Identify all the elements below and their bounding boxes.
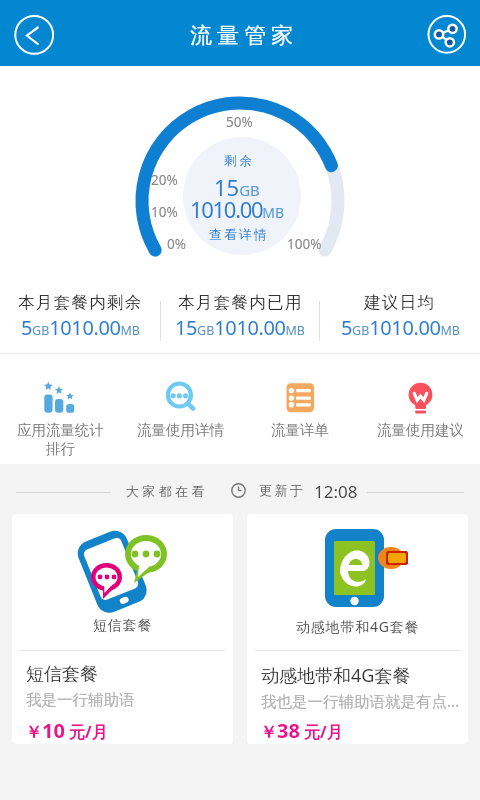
- button[interactable]: 流量使用建议: [360, 354, 480, 464]
- button[interactable]: Share: [425, 14, 467, 56]
- staticText: 5GB1010.00MB: [21, 314, 140, 341]
- staticText: 我是一行辅助语: [26, 690, 135, 710]
- button[interactable]: 本月套餐内剩余: [0, 288, 160, 353]
- staticText: 12:08: [314, 480, 358, 503]
- staticText: 短信套餐: [93, 617, 153, 635]
- staticText: 更新于: [259, 482, 306, 498]
- staticText: 流量使用详情: [137, 421, 224, 439]
- button[interactable]: 动感地带和4G套餐: [247, 514, 468, 744]
- staticText: 50%: [226, 113, 253, 131]
- staticText: 我也是一行辅助语就是有点…: [261, 690, 460, 711]
- staticText: 应用流量统计 排行: [17, 421, 104, 458]
- staticText: ￥10 元/月: [25, 717, 108, 744]
- staticText: 0%: [167, 235, 186, 253]
- staticText: 流量使用建议: [377, 421, 464, 439]
- staticText: 动感地带和4G套餐: [296, 617, 420, 636]
- staticText: 流量详单: [271, 421, 329, 439]
- staticText: 大家都在看: [124, 483, 206, 499]
- staticText: 短信套餐: [26, 663, 98, 686]
- staticText: 100%: [287, 235, 322, 253]
- staticText: 动感地带和4G套餐: [261, 663, 411, 688]
- staticText: 本月套餐内剩余: [18, 292, 143, 313]
- staticText: 20%: [151, 171, 178, 189]
- staticText: 本月套餐内已用: [178, 292, 303, 313]
- staticText: 10%: [151, 203, 178, 221]
- button[interactable]: 应用流量统计 排行: [0, 354, 120, 464]
- button[interactable]: 本月套餐内已用: [160, 288, 320, 353]
- staticText: 15GB1010.00MB: [175, 314, 305, 341]
- staticText: 剩余: [223, 153, 253, 169]
- button[interactable]: 短信套餐: [12, 514, 233, 744]
- staticText: 15GB: [214, 172, 260, 202]
- staticText: ￥38 元/月: [260, 717, 343, 744]
- staticText: 5GB1010.00MB: [341, 314, 460, 341]
- button[interactable]: Back: [13, 14, 55, 56]
- button[interactable]: 流量详单: [240, 354, 360, 464]
- button[interactable]: 流量使用详情: [120, 354, 240, 464]
- staticText: 建议日均: [364, 292, 436, 313]
- staticText: 1010.00MB: [190, 194, 285, 224]
- staticText: 查看详情: [209, 227, 269, 243]
- button[interactable]: 建议日均: [320, 288, 480, 353]
- button[interactable]: 查看详情: [183, 137, 301, 255]
- staticText: 流量管家: [190, 22, 299, 50]
